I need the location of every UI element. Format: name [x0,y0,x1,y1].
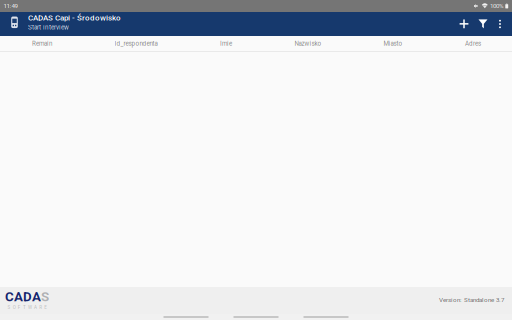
staticText: Start interview [28,24,69,31]
staticText: Adres [465,40,481,47]
staticText: Imie [220,40,232,47]
button[interactable]: Add [455,12,473,35]
staticText: Nazwisko [294,40,321,47]
staticText: S [8,305,11,310]
button[interactable]: Recents [303,314,348,320]
button[interactable]: Home [233,314,278,320]
staticText: R [39,305,42,310]
staticText: F [18,305,21,310]
staticText: Id_respondenta [114,40,157,47]
button[interactable]: Filter [474,12,492,35]
staticText: 100% [490,2,504,10]
button[interactable]: More options [492,12,508,35]
staticText: 11:49 [3,2,17,10]
staticText: S [41,289,49,304]
staticText: CADAS Capi - Środowisko [28,13,121,22]
staticText: O [13,305,16,310]
staticText: Miasto [383,40,402,47]
staticText: Version: Standalone 3.7 [439,296,504,304]
staticText: CADA [5,289,41,304]
staticText: T [23,305,26,310]
staticText: W [28,305,32,310]
staticText: A [34,305,37,310]
button[interactable]: Back [163,314,208,320]
staticText: Remain [32,40,52,47]
staticText: E [44,305,47,310]
